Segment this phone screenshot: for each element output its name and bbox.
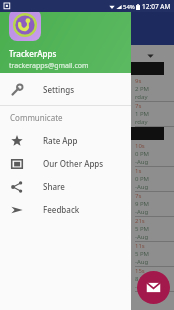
button[interactable]: Our Other Apps <box>0 152 131 175</box>
staticText: TrackerApps <box>9 48 57 59</box>
staticText: 2 PM <box>135 85 150 93</box>
staticText: trackerapps@gmail.com <box>9 61 89 71</box>
staticText: 5 PM <box>135 250 150 258</box>
staticText: 1 PM <box>135 110 150 118</box>
staticText: Our Other Apps <box>43 158 104 169</box>
staticText: -Aug <box>135 208 149 216</box>
staticText: Settings <box>43 84 75 95</box>
staticText: -Aug <box>135 233 149 241</box>
button[interactable]: Rate App <box>0 129 131 152</box>
staticText: 15s <box>135 267 145 275</box>
staticText: 10s <box>135 142 145 150</box>
staticText: Share <box>43 181 65 192</box>
staticText: -Aug <box>135 283 149 291</box>
staticText: Communicate <box>10 112 63 123</box>
staticText: rday <box>135 93 148 101</box>
staticText: 7s <box>135 192 142 200</box>
staticText: rday <box>135 118 148 126</box>
staticText: Feedback <box>43 204 80 215</box>
staticText: 0 PM <box>135 175 150 183</box>
button[interactable]: Send email <box>137 271 170 304</box>
staticText: 11s <box>135 242 145 250</box>
button[interactable]: Settings <box>0 78 131 101</box>
staticText: 8 PM <box>135 275 150 283</box>
staticText: 9s <box>135 77 142 85</box>
staticText: 54% <box>123 3 135 11</box>
staticText: 7s <box>135 102 142 110</box>
staticText: -Aug <box>135 158 149 166</box>
staticText: 5 PM <box>135 225 150 233</box>
staticText: 12:07 AM <box>142 2 171 11</box>
staticText: Rate App <box>43 135 78 146</box>
button[interactable]: Feedback <box>0 198 131 221</box>
staticText: 0 PM <box>135 150 150 158</box>
staticText: 9 PM <box>135 200 150 208</box>
staticText: 1s <box>135 167 142 175</box>
staticText: -Aug <box>135 258 149 266</box>
button[interactable]: Share <box>0 175 131 198</box>
staticText: -Aug <box>135 183 149 191</box>
staticText: 21s <box>135 217 145 225</box>
